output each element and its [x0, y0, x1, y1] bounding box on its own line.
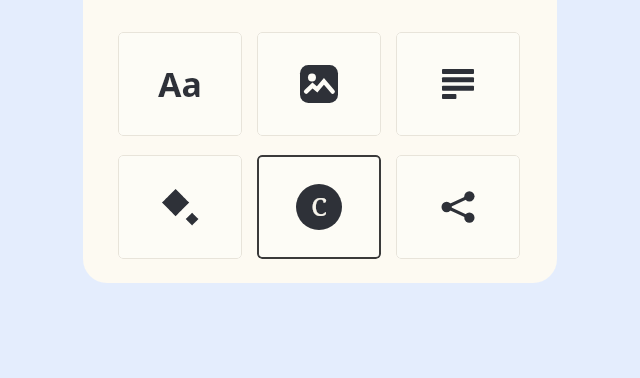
- button[interactable]: Text lines: [396, 32, 520, 136]
- button[interactable]: Image: [257, 32, 381, 136]
- button[interactable]: Text style: [118, 32, 242, 136]
- staticText: Aa: [158, 61, 202, 107]
- button[interactable]: Canva logo: [257, 155, 381, 259]
- button[interactable]: Share: [396, 155, 520, 259]
- staticText: C: [311, 189, 327, 223]
- button[interactable]: Effects: [118, 155, 242, 259]
